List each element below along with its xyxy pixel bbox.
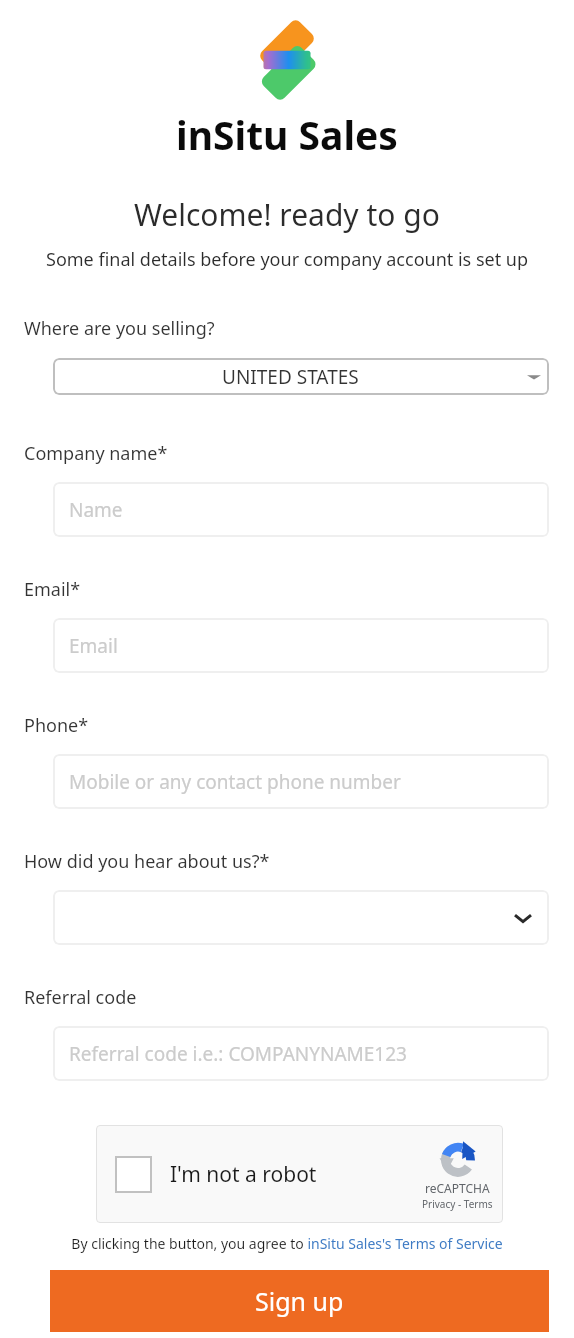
staticText: Name <box>69 497 123 523</box>
staticText: By clicking the button, you agree to inS… <box>71 1234 503 1253</box>
staticText: Privacy - Terms <box>422 1197 493 1211</box>
staticText: Welcome! ready to go <box>134 194 440 235</box>
button[interactable]: Email <box>53 618 549 673</box>
staticText: UNITED STATES <box>222 364 359 390</box>
button[interactable]: I'm not a robot <box>96 1125 503 1223</box>
staticText: I'm not a robot <box>170 1160 317 1189</box>
button[interactable]: Name <box>53 482 549 537</box>
staticText: Referral code <box>24 985 137 1010</box>
button[interactable]: Mobile or any contact phone number <box>53 754 549 809</box>
staticText: inSitu Sales <box>176 108 398 161</box>
staticText: Email* <box>24 577 81 602</box>
staticText: Referral code i.e.: COMPANYNAME123 <box>69 1041 407 1067</box>
button[interactable]: I'm not a robot <box>115 1156 152 1193</box>
staticText: Where are you selling? <box>24 316 215 341</box>
button[interactable]: Sign up <box>50 1270 549 1332</box>
staticText: Email <box>69 633 118 659</box>
button[interactable]: Referral code i.e.: COMPANYNAME123 <box>53 1026 549 1081</box>
staticText: Sign up <box>255 1284 344 1318</box>
staticText: Some final details before your company a… <box>46 247 529 272</box>
button[interactable]: How did you hear about us <box>53 890 549 945</box>
staticText: Mobile or any contact phone number <box>69 769 401 795</box>
staticText: Company name* <box>24 441 168 466</box>
button[interactable]: UNITED STATES <box>53 358 549 395</box>
staticText: reCAPTCHA <box>425 1180 490 1196</box>
staticText: How did you hear about us?* <box>24 849 270 874</box>
staticText: Phone* <box>24 713 89 738</box>
